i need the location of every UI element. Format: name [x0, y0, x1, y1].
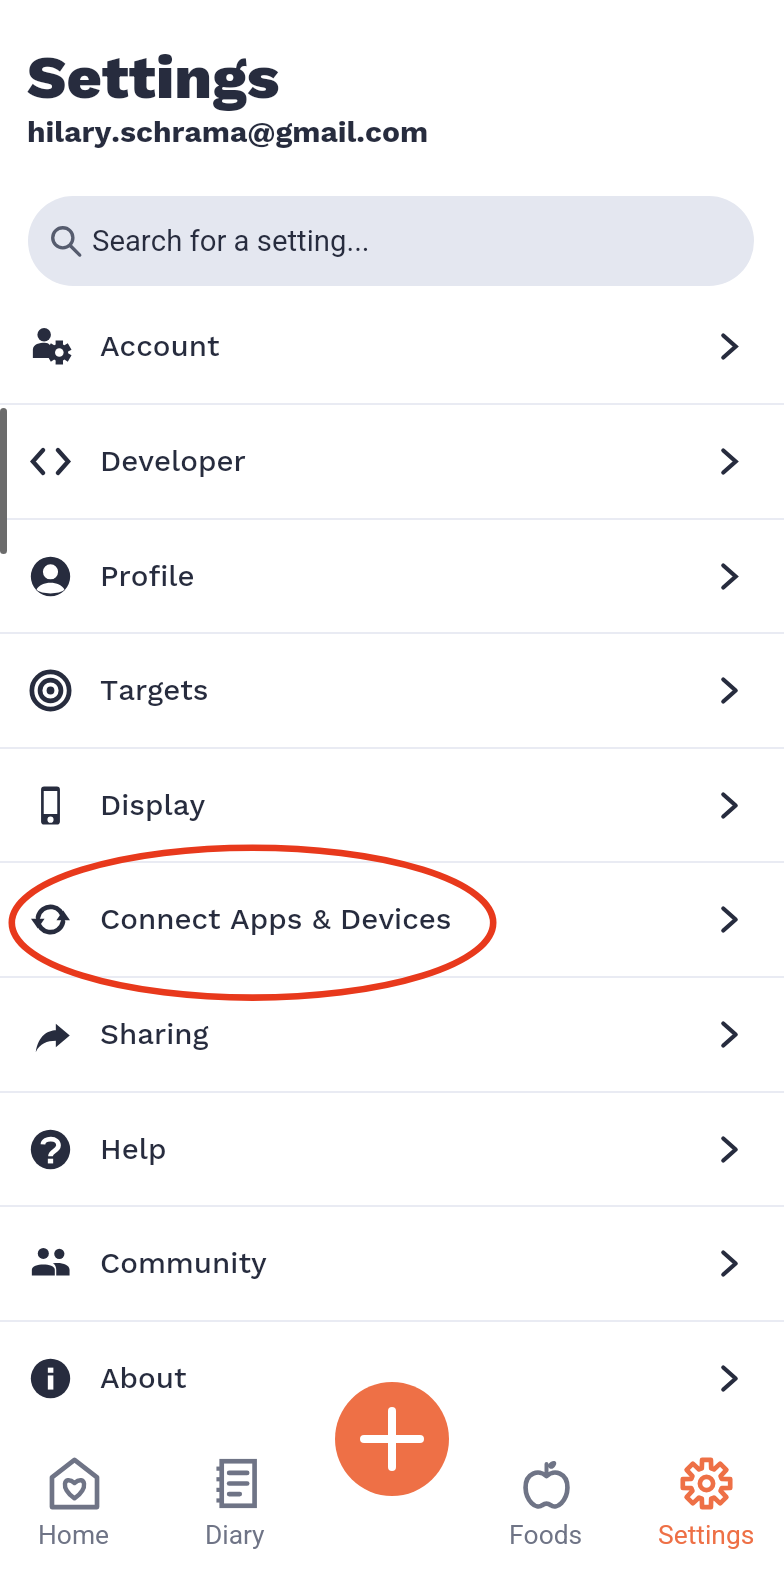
staticText: Targets	[100, 673, 209, 708]
button[interactable]: Add	[335, 1382, 449, 1496]
staticText: Help	[100, 1132, 167, 1167]
button[interactable]: Sharing	[0, 977, 784, 1092]
staticText: Settings	[658, 1520, 755, 1551]
staticText: Developer	[100, 444, 246, 479]
button[interactable]: Settings	[631, 1457, 781, 1567]
staticText: About	[100, 1361, 187, 1396]
staticText: Connect Apps & Devices	[100, 902, 452, 937]
button[interactable]: Developer	[0, 404, 784, 519]
staticText: Search for a setting...	[92, 224, 370, 258]
staticText: Home	[38, 1520, 110, 1551]
button[interactable]: Home	[0, 1457, 149, 1567]
staticText: hilary.schrama@gmail.com	[27, 114, 429, 149]
button[interactable]: Connect Apps & Devices	[0, 862, 784, 977]
staticText: Settings	[27, 41, 280, 113]
staticText: Display	[100, 788, 206, 823]
button[interactable]: Account	[0, 289, 784, 404]
staticText: Account	[100, 329, 220, 364]
staticText: Profile	[100, 559, 195, 594]
button[interactable]: Foods	[471, 1457, 621, 1567]
button[interactable]: Help	[0, 1092, 784, 1207]
button[interactable]: Display	[0, 748, 784, 863]
button[interactable]: Diary	[160, 1457, 310, 1567]
staticText: Foods	[509, 1520, 583, 1551]
button[interactable]: Community	[0, 1206, 784, 1321]
button[interactable]: Targets	[0, 633, 784, 748]
button[interactable]: About	[0, 1321, 784, 1436]
staticText: Community	[100, 1246, 267, 1281]
staticText: Sharing	[100, 1017, 209, 1052]
button[interactable]: Search for a setting...	[28, 196, 754, 286]
staticText: Diary	[205, 1520, 265, 1551]
button[interactable]: Profile	[0, 519, 784, 634]
